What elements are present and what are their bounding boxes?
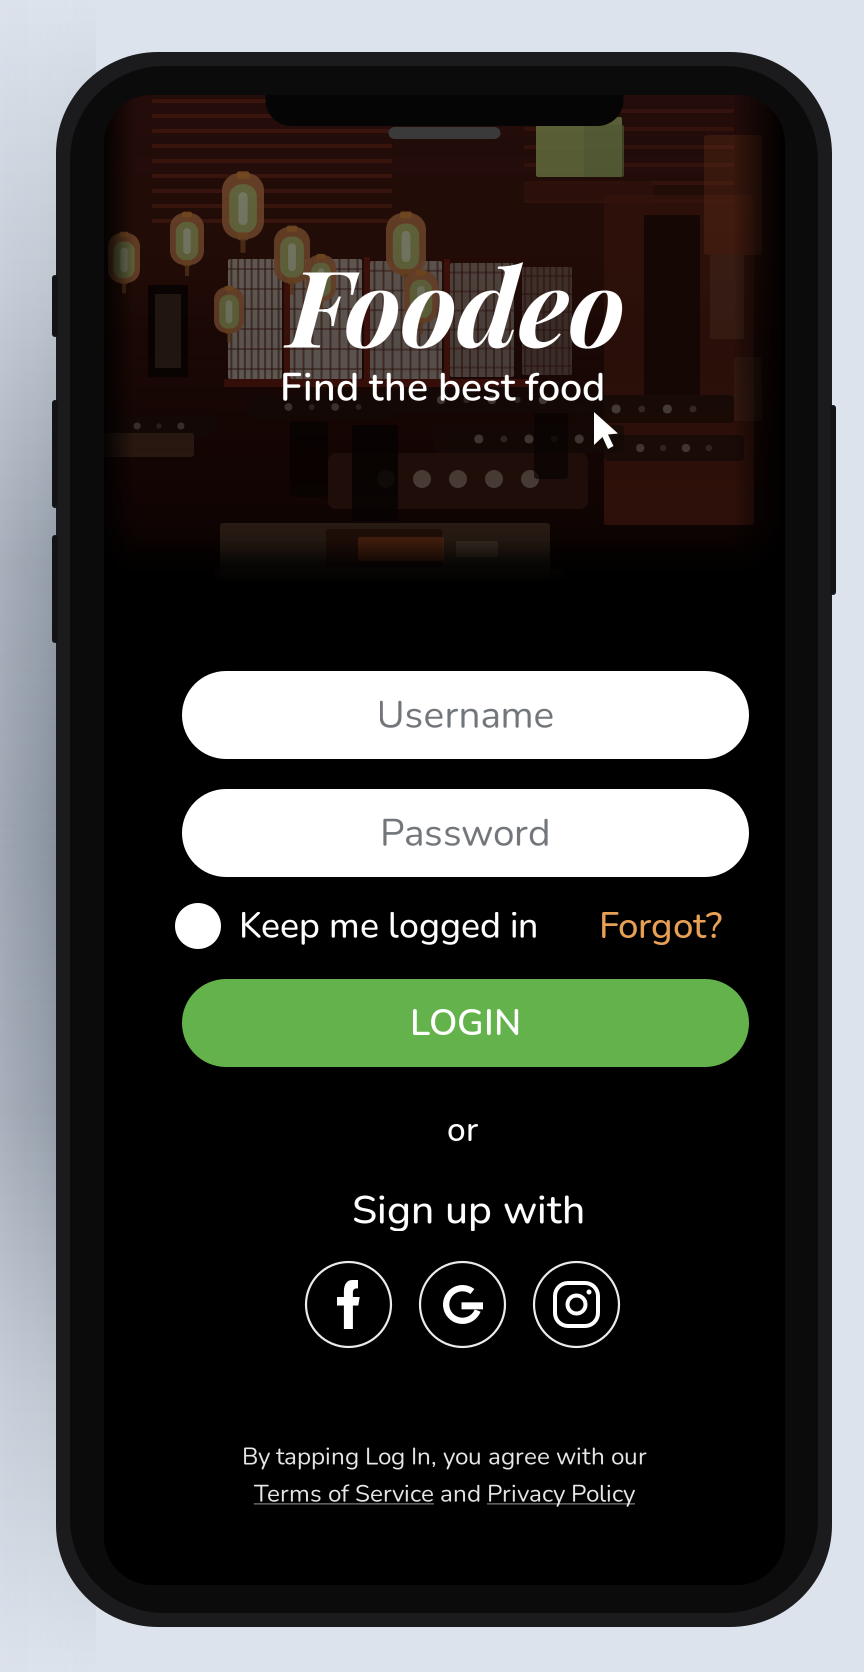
button[interactable]: Sign up with Google (420, 1262, 505, 1347)
staticText: Password (380, 807, 551, 859)
staticText: LOGIN (410, 998, 521, 1048)
button[interactable]: Keep me logged in (175, 900, 538, 952)
staticText: Forgot? (599, 901, 722, 951)
staticText: Sign up with (352, 1182, 585, 1238)
button[interactable]: Terms of Service (254, 1477, 434, 1510)
button[interactable]: Forgot? (599, 900, 722, 952)
staticText: or (447, 1107, 478, 1153)
staticText: Privacy Policy (487, 1477, 635, 1510)
button[interactable]: Sign up with Instagram (534, 1262, 619, 1347)
button[interactable]: Sign up with Facebook (306, 1262, 391, 1347)
staticText: Keep me logged in (239, 902, 538, 950)
staticText: Terms of Service (254, 1477, 434, 1510)
staticText: Username (376, 689, 554, 741)
staticText: Find the best food (280, 361, 605, 415)
button[interactable]: LOGIN (182, 979, 749, 1067)
staticText: By tapping Log In, you agree with our (242, 1440, 647, 1473)
button[interactable]: Privacy Policy (487, 1477, 635, 1510)
staticText: Foodeo (288, 232, 625, 374)
staticText: and (434, 1477, 487, 1510)
